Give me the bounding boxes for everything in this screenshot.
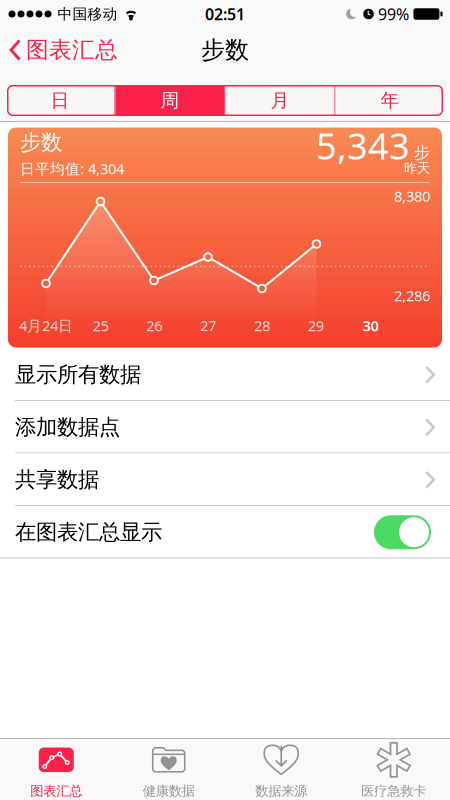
button[interactable]: 显示所有数据 bbox=[0, 348, 450, 401]
staticText: 27 bbox=[200, 316, 216, 335]
staticText: 图表汇总 bbox=[30, 783, 82, 799]
staticText: 健康数据 bbox=[143, 783, 195, 799]
staticText: 日平均值: 4,304 bbox=[20, 159, 124, 178]
staticText: 添加数据点 bbox=[15, 414, 120, 440]
button[interactable]: 数据来源 bbox=[225, 739, 337, 800]
staticText: 显示所有数据 bbox=[15, 362, 141, 388]
button[interactable]: 年 bbox=[335, 85, 444, 116]
staticText: 共享数据 bbox=[15, 467, 99, 493]
staticText: 昨天 bbox=[404, 160, 430, 176]
staticText: 25 bbox=[92, 316, 108, 335]
staticText: 中国移动 bbox=[57, 5, 117, 23]
staticText: 5,343 bbox=[316, 122, 410, 169]
staticText: 数据来源 bbox=[255, 783, 307, 799]
staticText: 4月24日 bbox=[19, 316, 73, 335]
staticText: 30 bbox=[362, 316, 378, 335]
staticText: 28 bbox=[254, 316, 270, 335]
staticText: 步 bbox=[414, 143, 430, 162]
button[interactable]: 健康数据 bbox=[112, 739, 225, 800]
staticText: 月 bbox=[270, 89, 289, 112]
staticText: 医疗急救卡 bbox=[361, 783, 426, 799]
button[interactable]: 图表汇总 bbox=[9, 36, 118, 64]
staticText: 步数 bbox=[20, 129, 62, 156]
button[interactable]: 图表汇总 bbox=[0, 739, 112, 800]
button[interactable]: 共享数据 bbox=[0, 453, 450, 506]
button[interactable]: 日 bbox=[5, 85, 114, 116]
staticText: 26 bbox=[146, 316, 162, 335]
staticText: 步数 bbox=[201, 35, 249, 65]
button[interactable]: 添加数据点 bbox=[0, 401, 450, 453]
staticText: 2,286 bbox=[394, 286, 430, 305]
staticText: 年 bbox=[380, 89, 399, 112]
staticText: 29 bbox=[308, 316, 324, 335]
staticText: 周 bbox=[160, 89, 179, 112]
staticText: 日 bbox=[50, 89, 69, 112]
staticText: 8,380 bbox=[394, 186, 430, 206]
staticText: 图表汇总 bbox=[26, 36, 118, 64]
staticText: 在图表汇总显示 bbox=[15, 519, 162, 545]
staticText: 02:51 bbox=[205, 3, 245, 25]
button[interactable]: 医疗急救卡 bbox=[337, 739, 450, 800]
button[interactable]: 周 bbox=[115, 85, 224, 116]
staticText: 99% bbox=[378, 3, 409, 25]
button[interactable]: 月 bbox=[225, 85, 334, 116]
button[interactable]: 在图表汇总显示 bbox=[0, 506, 450, 558]
